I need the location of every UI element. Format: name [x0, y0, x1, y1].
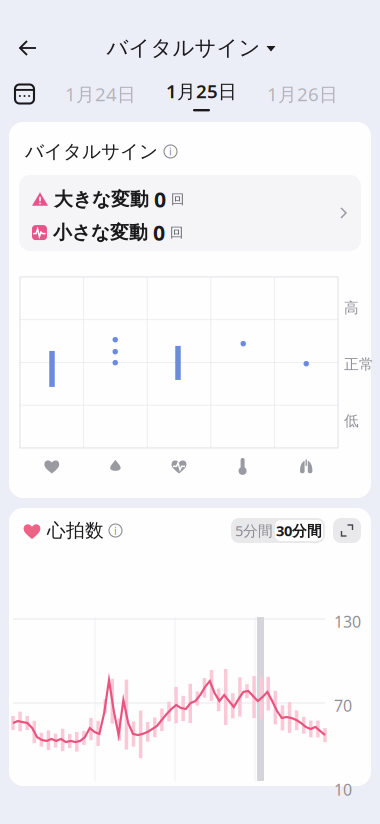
staticText: バイタルサイン: [106, 35, 260, 61]
staticText: 0: [153, 218, 165, 247]
button[interactable]: ECG: [147, 458, 211, 474]
button[interactable]: Back: [0, 28, 50, 68]
staticText: 0: [154, 185, 166, 213]
staticText: i: [114, 523, 117, 538]
button[interactable]: 1月24日: [59, 76, 142, 112]
staticText: 1月24日: [65, 82, 136, 106]
staticText: i: [169, 144, 172, 159]
button[interactable]: Heart rate: [20, 458, 84, 473]
staticText: 1月26日: [267, 82, 338, 106]
button[interactable]: Expand: [333, 518, 361, 543]
button[interactable]: Respiration: [274, 458, 338, 473]
staticText: 高: [344, 299, 359, 317]
staticText: 回: [171, 191, 184, 207]
button[interactable]: Calendar: [0, 77, 41, 110]
staticText: 30分間: [276, 521, 322, 540]
staticText: 大きな変動: [54, 188, 149, 211]
staticText: バイタルサイン: [25, 140, 158, 163]
button[interactable]: 1月25日: [160, 77, 243, 111]
staticText: 心拍数: [47, 519, 104, 542]
button[interactable]: Blood oxygen: [84, 459, 147, 472]
button[interactable]: 5分間: [233, 520, 275, 541]
staticText: 正常: [344, 355, 374, 373]
staticText: 1月25日: [166, 79, 237, 103]
button[interactable]: 1月26日: [261, 76, 344, 112]
button[interactable]: バイタルサイン: [106, 27, 275, 69]
button[interactable]: 30分間: [275, 520, 323, 541]
staticText: 70: [334, 695, 352, 716]
staticText: 回: [170, 224, 183, 241]
button[interactable]: Temperature: [211, 457, 274, 475]
button[interactable]: 大きな変動: [19, 175, 361, 251]
staticText: 5分間: [235, 521, 273, 540]
staticText: 小さな変動: [53, 221, 148, 244]
staticText: 低: [344, 412, 359, 430]
staticText: 130: [334, 611, 361, 632]
staticText: 10: [334, 779, 352, 800]
